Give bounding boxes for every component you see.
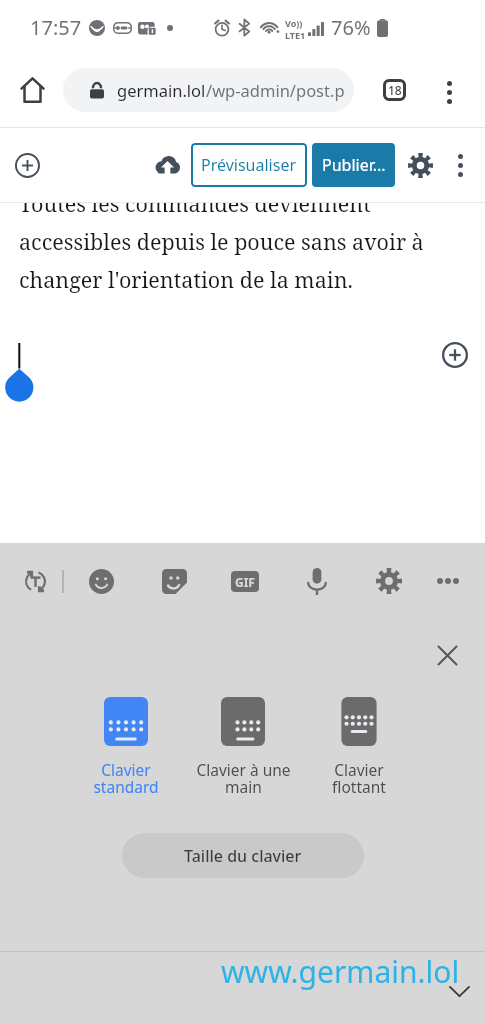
staticText: Vo)) [285, 17, 303, 29]
button[interactable]: Prévisualiser [191, 143, 307, 187]
button[interactable]: Publier... [312, 143, 395, 187]
button[interactable]: More options [427, 70, 471, 114]
staticText: Publier... [322, 154, 386, 176]
button[interactable]: Close [427, 635, 467, 675]
button[interactable]: Translate [13, 559, 57, 603]
button[interactable]: Home [12, 125, 52, 165]
staticText: Clavier à une main [196, 759, 291, 798]
button[interactable]: Stickers [152, 559, 196, 603]
staticText: Prévisualiser [201, 154, 297, 176]
staticText: /wp-admin/post.p [206, 79, 345, 101]
button[interactable]: Clavier flottant [299, 697, 419, 798]
button[interactable]: More [440, 145, 480, 185]
button[interactable]: Clavier à une main [183, 697, 303, 798]
button[interactable]: Add block [434, 334, 476, 376]
staticText: Clavier flottant [332, 759, 386, 798]
staticText: Taille du clavier [184, 845, 302, 867]
button[interactable]: Hide keyboard [438, 970, 480, 1012]
staticText: 76% [331, 14, 371, 41]
staticText: Clavier standard [93, 759, 159, 798]
staticText: 17:57 [30, 14, 82, 41]
button[interactable]: Save draft [147, 145, 187, 185]
staticText: 18 [388, 82, 402, 98]
button[interactable]: Tabs, 18 open [374, 70, 414, 110]
button[interactable]: Clavier standard [66, 697, 186, 798]
staticText: LTE1 [285, 29, 306, 41]
button[interactable]: Settings [400, 145, 440, 185]
button[interactable]: Voice input [295, 559, 339, 603]
button[interactable]: GIF [223, 559, 267, 603]
button[interactable]: Taille du clavier [122, 833, 364, 878]
button[interactable]: Home [12, 70, 52, 110]
button[interactable]: germain.lol [63, 68, 354, 112]
button[interactable]: More [426, 559, 470, 603]
staticText: Toutes les commandes deviennent accessib… [19, 203, 424, 294]
button[interactable]: Emoji [79, 559, 123, 603]
staticText: germain.lol [117, 79, 206, 101]
staticText: GIF [235, 574, 255, 590]
button[interactable]: Add block [7, 145, 47, 185]
button[interactable]: Keyboard settings [367, 559, 411, 603]
staticText: www.germain.lol [221, 951, 460, 992]
